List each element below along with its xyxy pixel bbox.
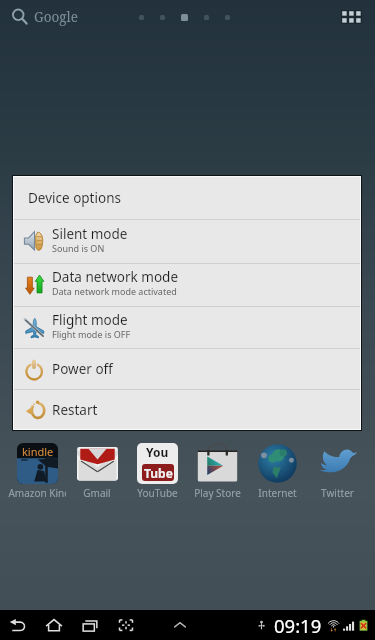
staticText: Gmail <box>83 486 111 500</box>
staticText: 09:19 <box>274 613 322 638</box>
button[interactable]: Back <box>0 610 36 640</box>
button[interactable]: Apps <box>336 2 366 32</box>
staticText: Sound is ON <box>52 242 105 254</box>
button[interactable]: Data network mode <box>14 264 360 306</box>
button[interactable]: Gmail <box>67 443 127 499</box>
staticText: Data network mode <box>52 268 178 286</box>
staticText: You <box>146 444 169 460</box>
button[interactable]: You <box>127 443 187 499</box>
staticText: Data network mode activated <box>52 285 177 297</box>
staticText: Amazon Kindle <box>8 486 66 500</box>
button[interactable]: Flight mode <box>14 307 360 348</box>
staticText: Power off <box>52 360 113 378</box>
staticText: Internet <box>258 486 297 500</box>
button[interactable]: Power off <box>14 349 360 389</box>
staticText: kindle <box>22 444 54 459</box>
staticText: Twitter <box>321 486 354 500</box>
staticText: Play Store <box>194 486 241 500</box>
staticText: Google <box>34 8 78 26</box>
button[interactable]: Restart <box>14 390 360 429</box>
button[interactable]: Screen capture <box>108 610 144 640</box>
staticText: Flight mode <box>52 311 128 329</box>
button[interactable]: Show keyboard <box>168 613 192 637</box>
button[interactable]: Twitter <box>307 443 367 499</box>
staticText: Tube <box>144 465 173 481</box>
button[interactable]: Play Store <box>187 443 247 499</box>
staticText: YouTube <box>137 486 178 500</box>
button[interactable]: Google search <box>9 6 78 28</box>
staticText: Device options <box>28 189 121 207</box>
button[interactable]: Home <box>36 610 72 640</box>
button[interactable]: kindle <box>7 443 67 499</box>
staticText: Restart <box>52 401 98 419</box>
button[interactable]: Recent apps <box>72 610 108 640</box>
staticText: Flight mode is OFF <box>52 328 131 340</box>
button[interactable]: Internet <box>247 443 307 499</box>
button[interactable]: Silent mode <box>14 220 360 263</box>
staticText: Silent mode <box>52 225 128 243</box>
